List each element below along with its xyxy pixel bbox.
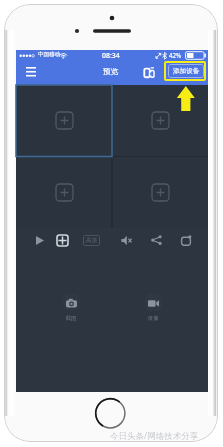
staticText: 42% — [169, 51, 182, 59]
button[interactable]: Menu — [20, 63, 42, 80]
staticText: 今日头条/网络技术分享 — [110, 430, 199, 442]
staticText: 高清 — [86, 237, 97, 244]
button[interactable] — [112, 85, 208, 156]
button[interactable]: Play — [29, 228, 51, 252]
staticText: 截图 — [65, 315, 77, 322]
staticText: 08:34 — [102, 51, 120, 60]
staticText: 录像 — [147, 315, 159, 322]
button[interactable] — [16, 156, 112, 228]
staticText: 添加设备 — [173, 67, 200, 75]
button[interactable]: 高清 — [83, 235, 100, 246]
staticText: 中国移动 — [38, 51, 61, 58]
staticText: 预览 — [103, 67, 119, 77]
button[interactable]: Share — [145, 228, 167, 252]
button[interactable]: Channel count — [140, 63, 158, 80]
button[interactable] — [16, 85, 112, 156]
button[interactable] — [112, 156, 208, 228]
button[interactable]: Snapshot — [175, 228, 197, 252]
button[interactable]: Grid layout — [51, 228, 73, 252]
button[interactable]: Mute — [116, 228, 138, 252]
button[interactable]: 录像 — [138, 294, 168, 322]
button[interactable]: 截图 — [56, 294, 86, 322]
button[interactable]: 添加设备 — [168, 64, 204, 78]
